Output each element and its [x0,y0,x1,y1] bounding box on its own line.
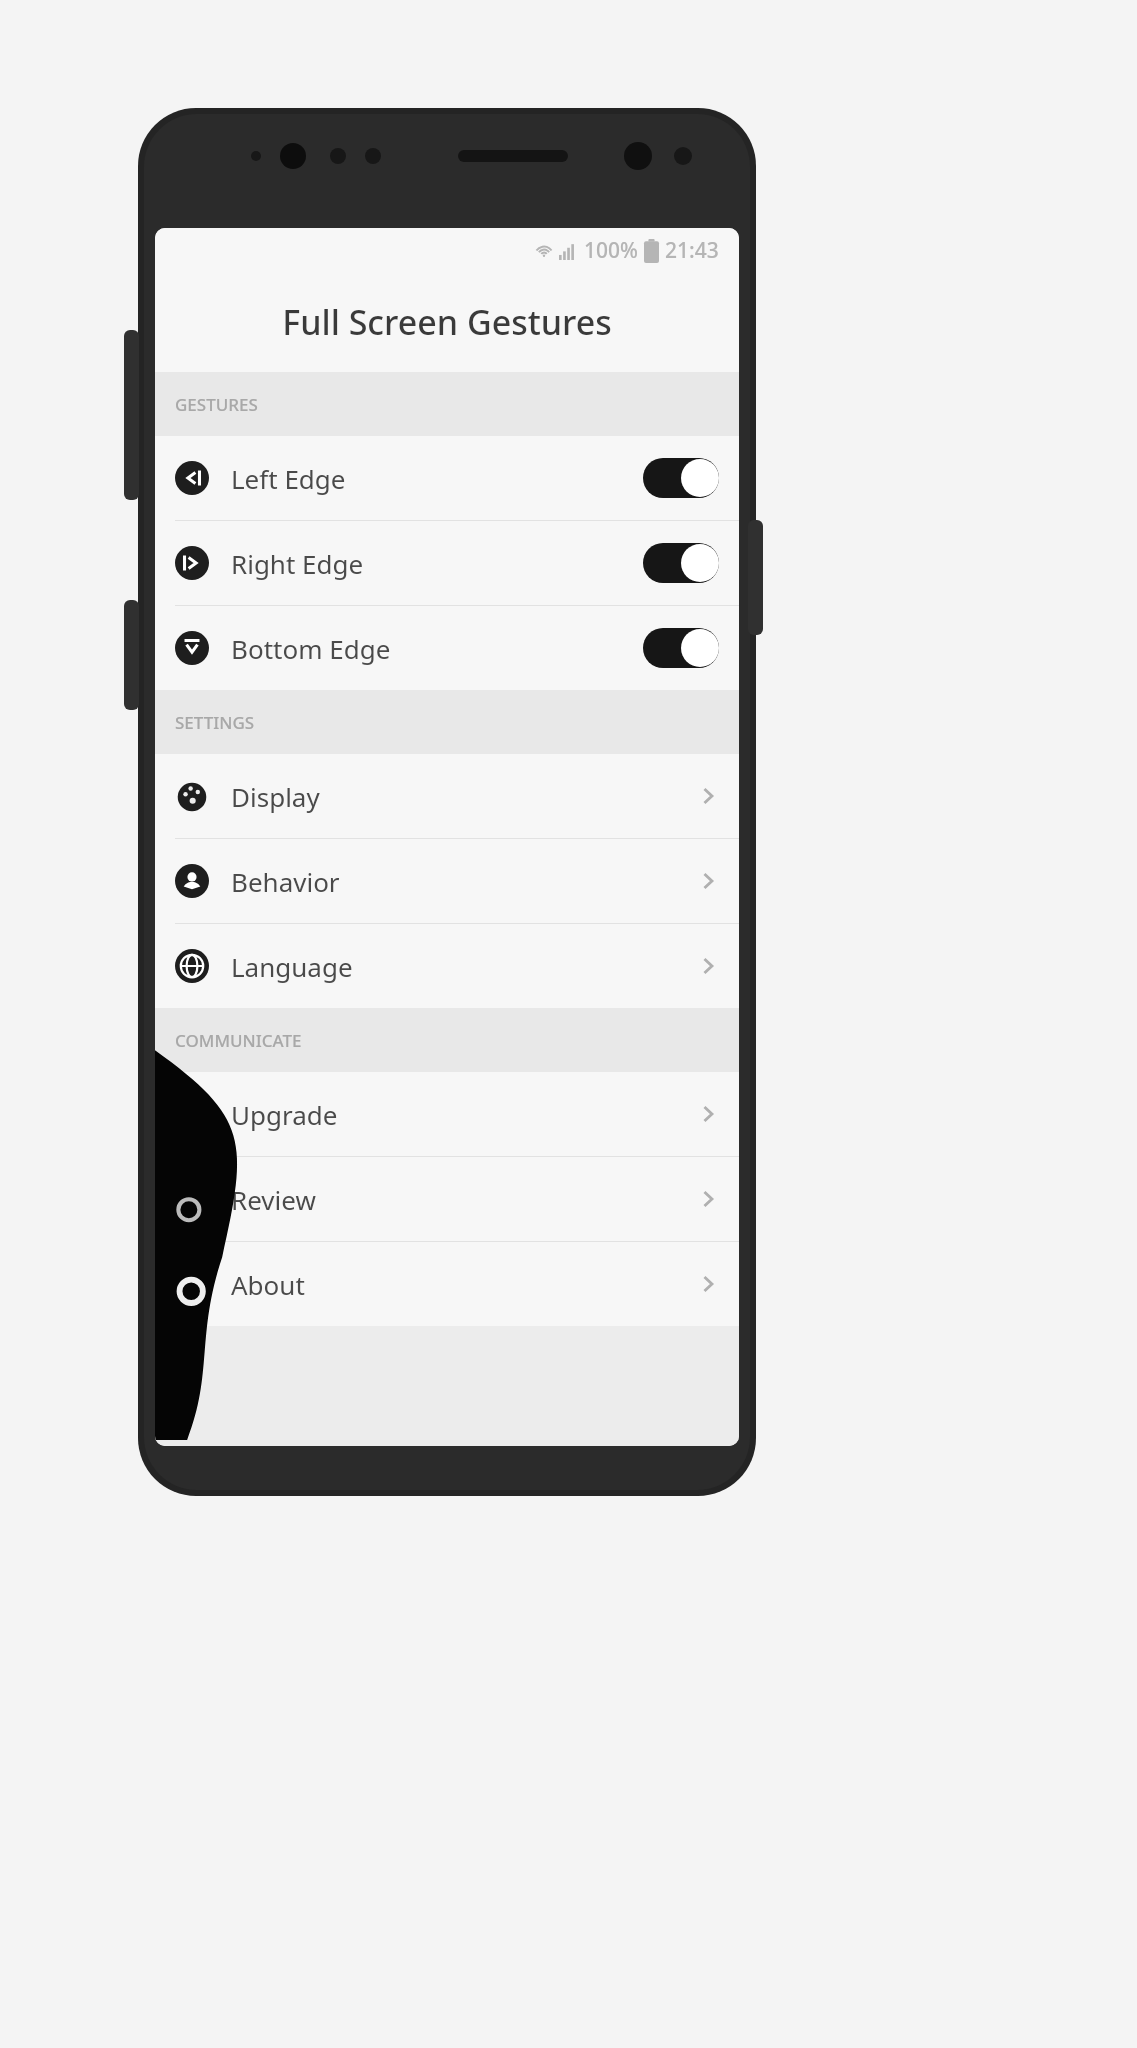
staticText: GESTURES [175,393,258,416]
button[interactable]: Bottom Edge [155,606,739,690]
button[interactable]: Toggle [643,457,719,499]
button[interactable]: Toggle [643,627,719,669]
button[interactable]: Toggle [643,542,719,584]
staticText: Left Edge [231,461,346,496]
staticText: Upgrade [231,1097,338,1132]
staticText: SETTINGS [175,711,255,734]
staticText: Review [231,1182,316,1217]
button[interactable]: Display [155,754,739,838]
staticText: 100% [584,236,638,265]
staticText: Bottom Edge [231,631,391,666]
staticText: Full Screen Gestures [282,299,612,345]
staticText: Right Edge [231,546,364,581]
button[interactable]: Left Edge [155,436,739,520]
button[interactable]: About [155,1242,739,1326]
staticText: COMMUNICATE [175,1029,302,1052]
button[interactable]: Right Edge [155,521,739,605]
button[interactable]: Language [155,924,739,1008]
button[interactable]: Upgrade [155,1072,739,1156]
staticText: 21:43 [665,236,719,265]
staticText: Language [231,949,353,984]
button[interactable]: Behavior [155,839,739,923]
staticText: About [231,1267,305,1302]
button[interactable]: Review [155,1157,739,1241]
staticText: Behavior [231,864,340,899]
staticText: Display [231,779,320,814]
